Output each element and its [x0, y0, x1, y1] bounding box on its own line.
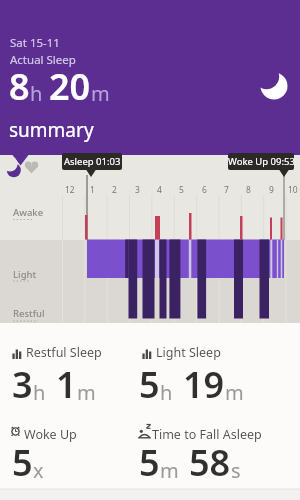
staticText: 2	[112, 184, 117, 196]
staticText: 5	[139, 360, 160, 409]
staticText: m	[160, 457, 179, 484]
staticText: 20	[49, 62, 91, 111]
staticText: h	[33, 379, 46, 406]
staticText: h	[160, 379, 173, 406]
staticText: x	[33, 457, 44, 484]
staticText: s	[231, 457, 241, 484]
button[interactable]: 5	[139, 438, 241, 487]
staticText: Awake	[13, 206, 44, 219]
staticText: 7	[224, 184, 229, 196]
button[interactable]	[5, 158, 25, 178]
staticText: Asleep 01:03	[64, 155, 121, 168]
staticText: Light Sleep	[156, 344, 221, 361]
staticText: summary	[9, 117, 94, 143]
staticText: Time to Fall Asleep	[152, 426, 262, 443]
staticText: 5	[179, 184, 184, 196]
button[interactable]: 3	[12, 360, 96, 409]
staticText: m	[91, 80, 110, 107]
staticText: 5	[139, 438, 160, 487]
staticText: 1	[90, 184, 95, 196]
staticText: 8	[246, 184, 251, 196]
staticText: 5	[12, 438, 33, 487]
staticText: m	[77, 379, 96, 406]
staticText: 3	[12, 360, 33, 409]
staticText: Light	[13, 268, 37, 281]
staticText: Restful	[13, 307, 45, 320]
staticText: Woke Up	[24, 426, 77, 443]
staticText: Actual Sleep	[10, 52, 76, 68]
staticText: Restful Sleep	[26, 344, 102, 361]
staticText: 9	[269, 184, 274, 196]
staticText: 3	[135, 184, 140, 196]
staticText: 58	[189, 438, 231, 487]
staticText: Woke Up 09:53	[228, 155, 294, 168]
staticText: 12	[65, 184, 75, 196]
staticText: 6	[202, 184, 207, 196]
staticText: h	[30, 80, 43, 107]
button[interactable]: 5	[139, 360, 244, 409]
staticText: Sat 15-11	[10, 35, 60, 51]
staticText: m	[225, 379, 244, 406]
button[interactable]: 5	[12, 438, 44, 487]
staticText: 1	[56, 360, 77, 409]
staticText: 4	[157, 184, 162, 196]
staticText: 19	[183, 360, 225, 409]
staticText: 10	[288, 184, 298, 196]
button[interactable]	[25, 158, 43, 178]
staticText: 8	[9, 62, 30, 111]
